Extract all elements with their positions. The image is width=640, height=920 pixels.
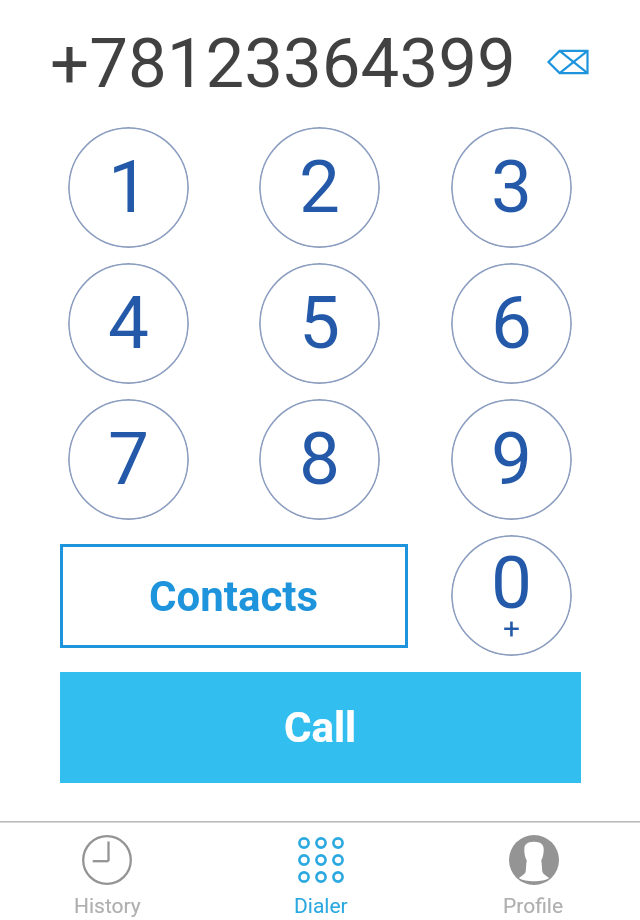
staticText: 4	[108, 280, 150, 366]
staticText: 7	[108, 416, 150, 502]
button[interactable]: 6	[451, 263, 572, 384]
button[interactable]: Call	[60, 672, 581, 783]
staticText: Profile	[503, 894, 564, 919]
staticText: 3	[491, 144, 533, 230]
button[interactable]: 5	[259, 263, 380, 384]
staticText: History	[74, 894, 141, 919]
staticText: 8	[299, 416, 341, 502]
button[interactable]: Profile	[427, 821, 640, 920]
button[interactable]: Dialer	[214, 821, 427, 920]
button[interactable]: 8	[259, 399, 380, 520]
staticText: Contacts	[149, 572, 319, 621]
button[interactable]: 7	[68, 399, 189, 520]
staticText: 0	[491, 540, 533, 626]
button[interactable]: 9	[451, 399, 572, 520]
button[interactable]: 3	[451, 127, 572, 248]
staticText: 6	[491, 280, 533, 366]
staticText: 1	[108, 144, 150, 230]
staticText: Call	[284, 703, 357, 752]
button[interactable]: Backspace	[534, 28, 602, 96]
button[interactable]: 1	[68, 127, 189, 248]
staticText: 5	[299, 280, 341, 366]
staticText: 2	[299, 144, 341, 230]
button[interactable]: 0	[451, 535, 572, 656]
button[interactable]: Contacts	[60, 544, 408, 648]
button[interactable]: 2	[259, 127, 380, 248]
button[interactable]: History	[0, 821, 214, 920]
staticText: +	[503, 611, 521, 646]
staticText: 9	[491, 416, 533, 502]
staticText: +78123364399	[50, 23, 516, 104]
staticText: Dialer	[294, 894, 348, 919]
button[interactable]: 4	[68, 263, 189, 384]
